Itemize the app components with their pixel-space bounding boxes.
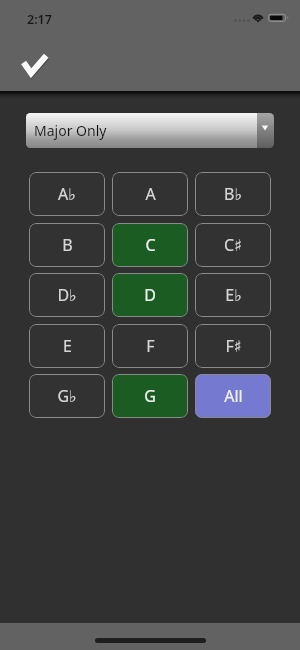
button[interactable]: B♭: [195, 172, 271, 216]
button[interactable]: E: [29, 324, 105, 368]
button[interactable]: C: [112, 223, 188, 267]
button[interactable]: D: [112, 273, 188, 317]
button[interactable]: C♯: [195, 223, 271, 267]
staticText: B: [62, 234, 73, 256]
button[interactable]: A: [112, 172, 188, 216]
staticText: A♭: [58, 183, 76, 205]
staticText: F♯: [225, 335, 242, 357]
button[interactable]: E♭: [195, 273, 271, 317]
button[interactable]: Major Only: [26, 113, 274, 148]
button[interactable]: D♭: [29, 273, 105, 317]
staticText: G♭: [57, 385, 77, 407]
button[interactable]: B: [29, 223, 105, 267]
staticText: C♯: [224, 234, 242, 256]
button[interactable]: F♯: [195, 324, 271, 368]
button[interactable]: Done: [13, 44, 57, 88]
staticText: C: [145, 234, 156, 256]
button[interactable]: A♭: [29, 172, 105, 216]
staticText: D: [144, 284, 156, 306]
staticText: F: [146, 335, 155, 357]
staticText: E♭: [225, 284, 242, 306]
button[interactable]: G: [112, 374, 188, 418]
staticText: All: [224, 385, 243, 407]
staticText: A: [145, 183, 156, 205]
staticText: Major Only: [34, 121, 107, 140]
staticText: B♭: [224, 183, 242, 205]
button[interactable]: G♭: [29, 374, 105, 418]
staticText: D♭: [57, 284, 77, 306]
button[interactable]: All: [195, 374, 271, 418]
button[interactable]: F: [112, 324, 188, 368]
staticText: G: [144, 385, 156, 407]
staticText: E: [63, 335, 72, 357]
staticText: 2:17: [27, 11, 52, 28]
